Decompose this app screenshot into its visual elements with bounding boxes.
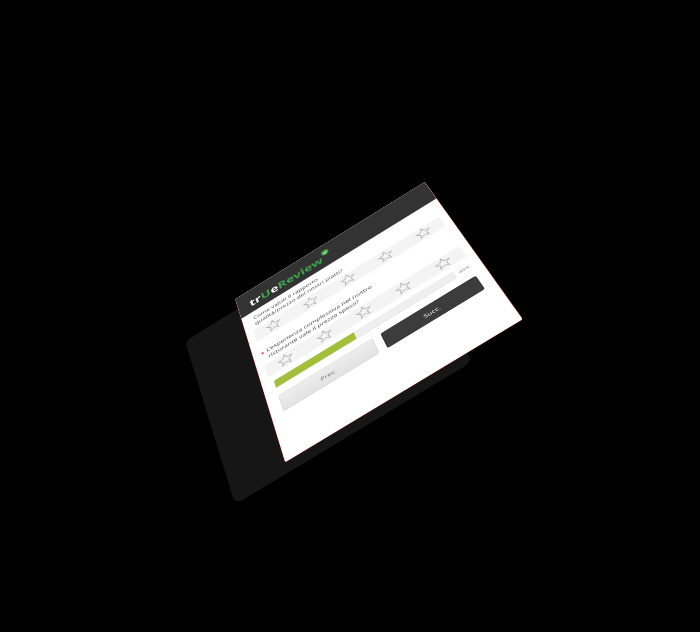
staticText: Succ. [422, 304, 442, 320]
button[interactable]: Prec. [278, 338, 380, 411]
staticText: 45% [457, 264, 471, 275]
staticText: e [268, 281, 280, 296]
button[interactable]: Rating stars [264, 246, 467, 378]
button[interactable]: Succ. [380, 275, 485, 348]
staticText: tr [248, 292, 263, 309]
staticText: U [259, 286, 272, 302]
staticText: Come valuti il rapporto qualità/prezzo d… [252, 262, 344, 326]
button[interactable]: tr [235, 182, 436, 319]
button[interactable]: Rating stars [253, 216, 446, 342]
staticText: L'esperienza complessiva nel nostro rist… [265, 283, 376, 359]
staticText: Review [276, 254, 325, 292]
staticText: * [260, 349, 266, 358]
other: Verified [320, 248, 329, 257]
staticText: Prec. [319, 367, 338, 383]
